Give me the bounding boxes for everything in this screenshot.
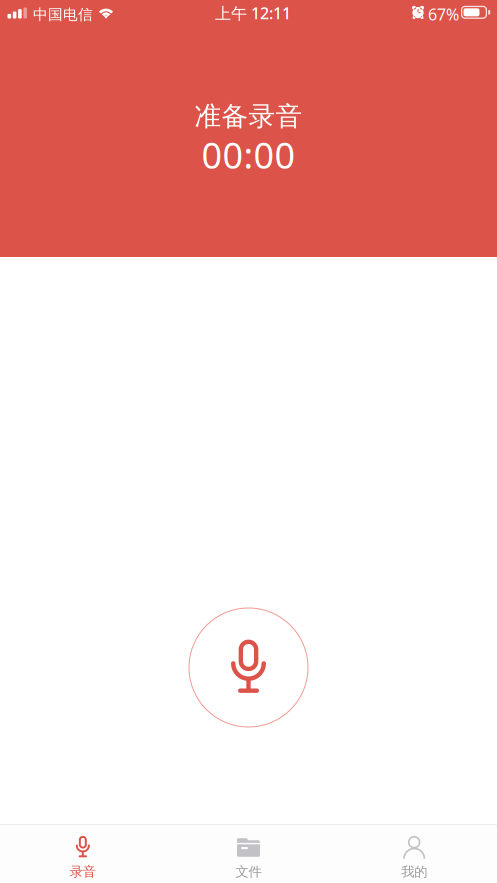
staticText: 准备录音 (194, 100, 302, 133)
staticText: 中国电信 (33, 5, 93, 23)
staticText: 录音 (70, 864, 96, 880)
staticText: 67% (428, 4, 459, 25)
button[interactable]: 文件 (166, 825, 331, 883)
staticText: 我的 (401, 864, 427, 880)
staticText: 00:00 (201, 131, 295, 179)
staticText: 上午 12:11 (215, 2, 291, 24)
staticText: 文件 (235, 864, 261, 880)
button[interactable]: 我的 (331, 825, 497, 883)
button[interactable]: 开始录音 (189, 608, 308, 727)
button[interactable]: 录音 (0, 825, 166, 883)
